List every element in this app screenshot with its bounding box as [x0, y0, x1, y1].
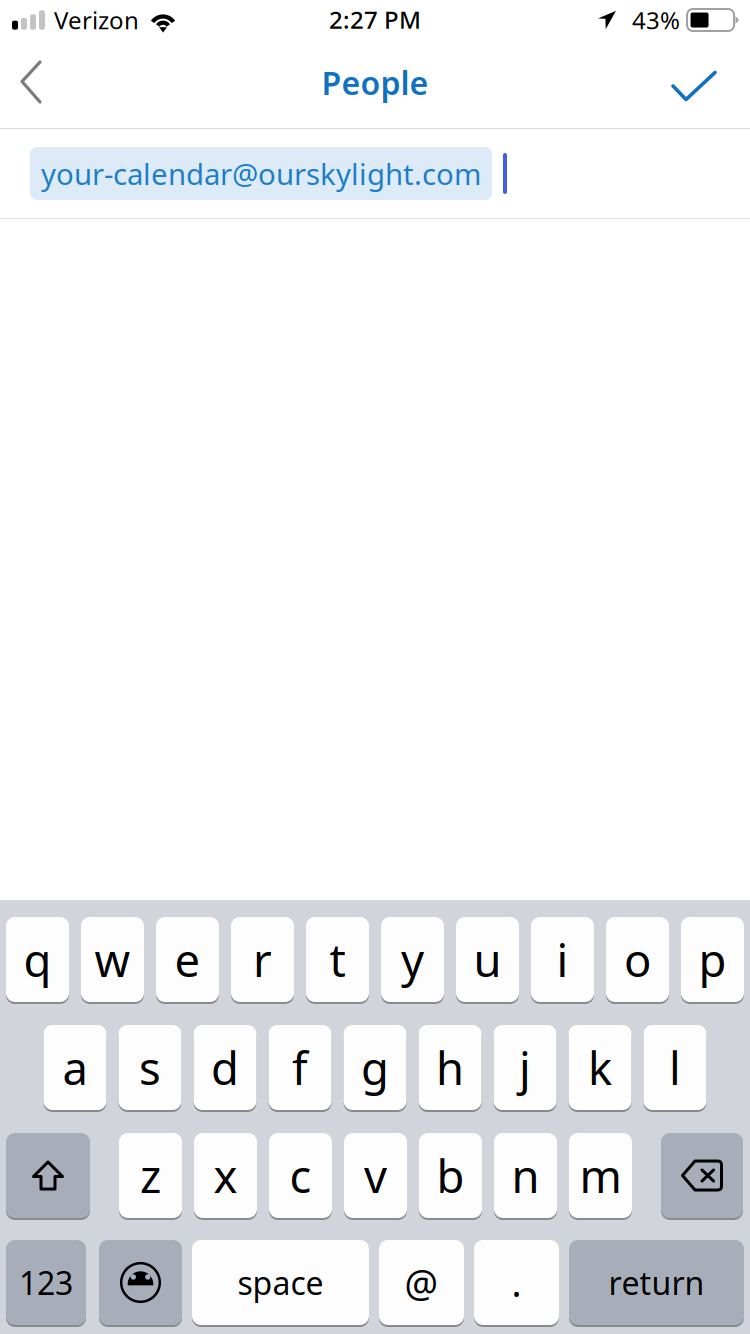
- staticText: j: [519, 1037, 531, 1098]
- button[interactable]: u: [456, 917, 519, 1002]
- staticText: f: [292, 1037, 308, 1098]
- staticText: c: [289, 1145, 311, 1206]
- staticText: i: [556, 929, 568, 990]
- button[interactable]: Emoji: [99, 1240, 182, 1325]
- button[interactable]: f: [268, 1025, 331, 1110]
- button[interactable]: r: [231, 917, 294, 1002]
- staticText: x: [213, 1145, 237, 1206]
- staticText: r: [253, 929, 272, 990]
- button[interactable]: g: [343, 1025, 406, 1110]
- staticText: b: [436, 1145, 464, 1206]
- staticText: d: [211, 1037, 239, 1098]
- button[interactable]: a: [43, 1025, 106, 1110]
- button[interactable]: j: [493, 1025, 556, 1110]
- button[interactable]: d: [193, 1025, 256, 1110]
- button[interactable]: t: [306, 917, 369, 1002]
- staticText: People: [321, 61, 428, 104]
- button[interactable]: c: [269, 1133, 332, 1218]
- button[interactable]: b: [419, 1133, 482, 1218]
- staticText: 123: [19, 1261, 73, 1304]
- staticText: Verizon: [54, 4, 139, 36]
- button[interactable]: q: [6, 917, 69, 1002]
- button[interactable]: v: [344, 1133, 407, 1218]
- staticText: t: [329, 929, 345, 990]
- staticText: z: [140, 1145, 161, 1206]
- button[interactable]: o: [606, 917, 669, 1002]
- button[interactable]: w: [81, 917, 144, 1002]
- button[interactable]: e: [156, 917, 219, 1002]
- staticText: y: [401, 929, 424, 990]
- staticText: return: [608, 1261, 704, 1304]
- button[interactable]: l: [643, 1025, 706, 1110]
- staticText: your-calendar@ourskylight.com: [41, 154, 481, 193]
- button[interactable]: @: [379, 1240, 464, 1325]
- staticText: h: [436, 1037, 464, 1098]
- button[interactable]: Done: [655, 44, 750, 128]
- staticText: a: [62, 1037, 87, 1098]
- button[interactable]: return: [569, 1240, 744, 1325]
- button[interactable]: x: [194, 1133, 257, 1218]
- staticText: space: [237, 1261, 323, 1304]
- button[interactable]: Shift: [6, 1133, 90, 1218]
- button[interactable]: n: [494, 1133, 557, 1218]
- button[interactable]: i: [531, 917, 594, 1002]
- button[interactable]: Back: [0, 44, 82, 128]
- button[interactable]: .: [474, 1240, 559, 1325]
- staticText: 43%: [632, 4, 680, 36]
- staticText: s: [139, 1037, 161, 1098]
- button[interactable]: space: [192, 1240, 369, 1325]
- staticText: o: [624, 929, 651, 990]
- staticText: u: [473, 929, 501, 990]
- staticText: p: [698, 929, 726, 990]
- button[interactable]: 123: [6, 1240, 86, 1325]
- button[interactable]: p: [681, 917, 744, 1002]
- staticText: g: [361, 1037, 389, 1098]
- button[interactable]: y: [381, 917, 444, 1002]
- staticText: .: [511, 1258, 521, 1307]
- staticText: k: [588, 1037, 612, 1098]
- staticText: m: [579, 1145, 621, 1206]
- button[interactable]: k: [568, 1025, 631, 1110]
- button[interactable]: s: [118, 1025, 181, 1110]
- button[interactable]: z: [119, 1133, 182, 1218]
- staticText: w: [94, 929, 130, 990]
- button[interactable]: your-calendar@ourskylight.com: [30, 147, 492, 200]
- button[interactable]: Delete: [661, 1133, 743, 1218]
- staticText: @: [404, 1258, 438, 1307]
- staticText: q: [23, 929, 51, 990]
- staticText: 2:27 PM: [329, 4, 421, 35]
- button[interactable]: h: [418, 1025, 481, 1110]
- staticText: l: [669, 1037, 681, 1098]
- staticText: v: [364, 1145, 387, 1206]
- staticText: n: [511, 1145, 539, 1206]
- button[interactable]: m: [569, 1133, 632, 1218]
- staticText: e: [174, 929, 200, 990]
